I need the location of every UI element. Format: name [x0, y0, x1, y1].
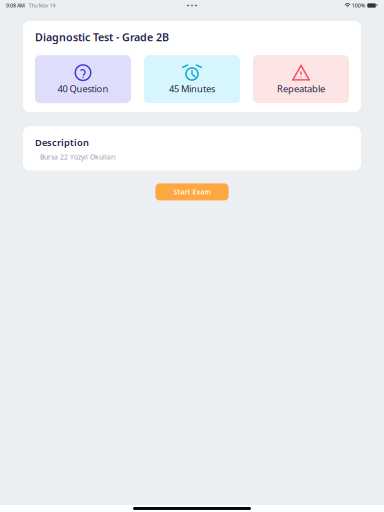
button[interactable]: Start Exam — [155, 183, 228, 200]
staticText: Thu Nov 14 — [28, 2, 55, 9]
staticText: 9:08 AM — [6, 2, 25, 9]
staticText: Description — [35, 136, 89, 149]
staticText: Repeatable — [277, 82, 325, 95]
staticText: Diagnostic Test - Grade 2B — [35, 30, 169, 44]
staticText: 100% — [352, 2, 366, 9]
staticText: Bursa 22 Yüzyıl Okulları — [40, 153, 116, 161]
staticText: 40 Question — [57, 82, 108, 95]
staticText: 45 Minutes — [169, 82, 215, 95]
staticText: Start Exam — [173, 187, 210, 196]
